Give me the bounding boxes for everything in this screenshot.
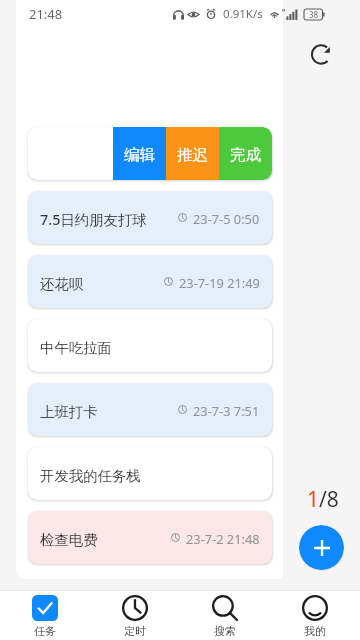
staticText: 1/8 bbox=[307, 485, 339, 514]
button[interactable]: 搜索 bbox=[180, 591, 270, 640]
button[interactable]: 推迟 bbox=[166, 127, 219, 180]
staticText: 我的 bbox=[304, 624, 326, 638]
button[interactable]: 中午吃拉面 bbox=[28, 319, 272, 372]
staticText: 开发我的任务栈 bbox=[40, 467, 141, 485]
staticText: 推迟 bbox=[177, 145, 208, 165]
button[interactable]: 上班打卡 bbox=[28, 383, 272, 436]
button[interactable]: Refresh bbox=[304, 36, 340, 72]
staticText: 23-7-5 0:50 bbox=[193, 210, 260, 227]
staticText: 搜索 bbox=[214, 624, 236, 638]
button[interactable]: 还花呗 bbox=[28, 255, 272, 308]
staticText: 完成 bbox=[230, 145, 261, 165]
staticText: 还花呗 bbox=[40, 275, 84, 293]
button[interactable]: 完成 bbox=[219, 127, 272, 180]
button[interactable]: 编辑 bbox=[113, 127, 166, 180]
staticText: 中午吃拉面 bbox=[40, 339, 112, 357]
staticText: 23-7-3 7:51 bbox=[193, 402, 260, 419]
staticText: 38 bbox=[309, 9, 319, 20]
staticText: 编辑 bbox=[124, 145, 155, 165]
button[interactable]: 定时 bbox=[90, 591, 180, 640]
staticText: 23-7-2 21:48 bbox=[186, 530, 260, 547]
staticText: 任务 bbox=[34, 624, 56, 638]
staticText: 检查电费 bbox=[40, 531, 98, 549]
button[interactable]: 我的 bbox=[270, 591, 360, 640]
staticText: 上班打卡 bbox=[40, 403, 98, 421]
button[interactable]: 7.5日约朋友打球 bbox=[28, 191, 272, 244]
staticText: 21:48 bbox=[29, 5, 63, 23]
staticText: 定时 bbox=[124, 624, 146, 638]
staticText: 23-7-19 21:49 bbox=[179, 274, 260, 291]
button[interactable]: 检查电费 bbox=[28, 511, 272, 564]
staticText: 0.91K/s bbox=[223, 6, 263, 22]
button[interactable]: 开发我的任务栈 bbox=[28, 447, 272, 500]
staticText: 7.5日约朋友打球 bbox=[40, 210, 147, 230]
button[interactable]: Add task bbox=[299, 525, 344, 570]
button[interactable]: 任务 bbox=[0, 591, 90, 640]
